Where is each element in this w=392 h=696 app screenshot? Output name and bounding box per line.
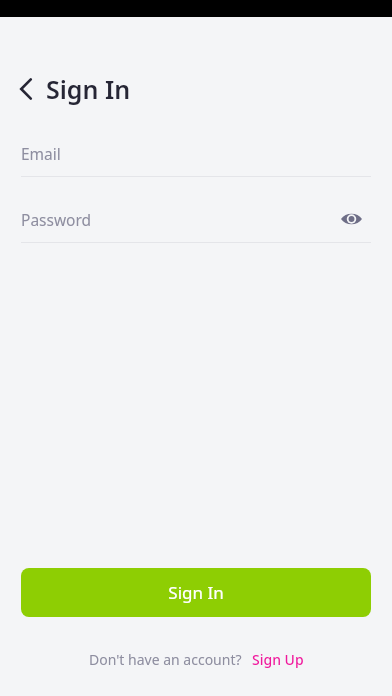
other: Back [18,76,34,102]
button[interactable]: Email [0,136,392,177]
staticText: Sign Up [252,650,304,669]
staticText: Password [21,209,92,230]
button[interactable]: Sign Up [252,650,304,669]
staticText: Sign In [46,72,131,106]
staticText: Sign In [168,581,224,604]
button[interactable]: Back [14,68,135,110]
staticText: Email [21,143,61,164]
staticText: Don't have an account? [89,650,242,669]
button[interactable]: Sign In [21,568,371,617]
button[interactable]: Password [0,202,392,236]
button[interactable]: Show password [339,207,363,231]
